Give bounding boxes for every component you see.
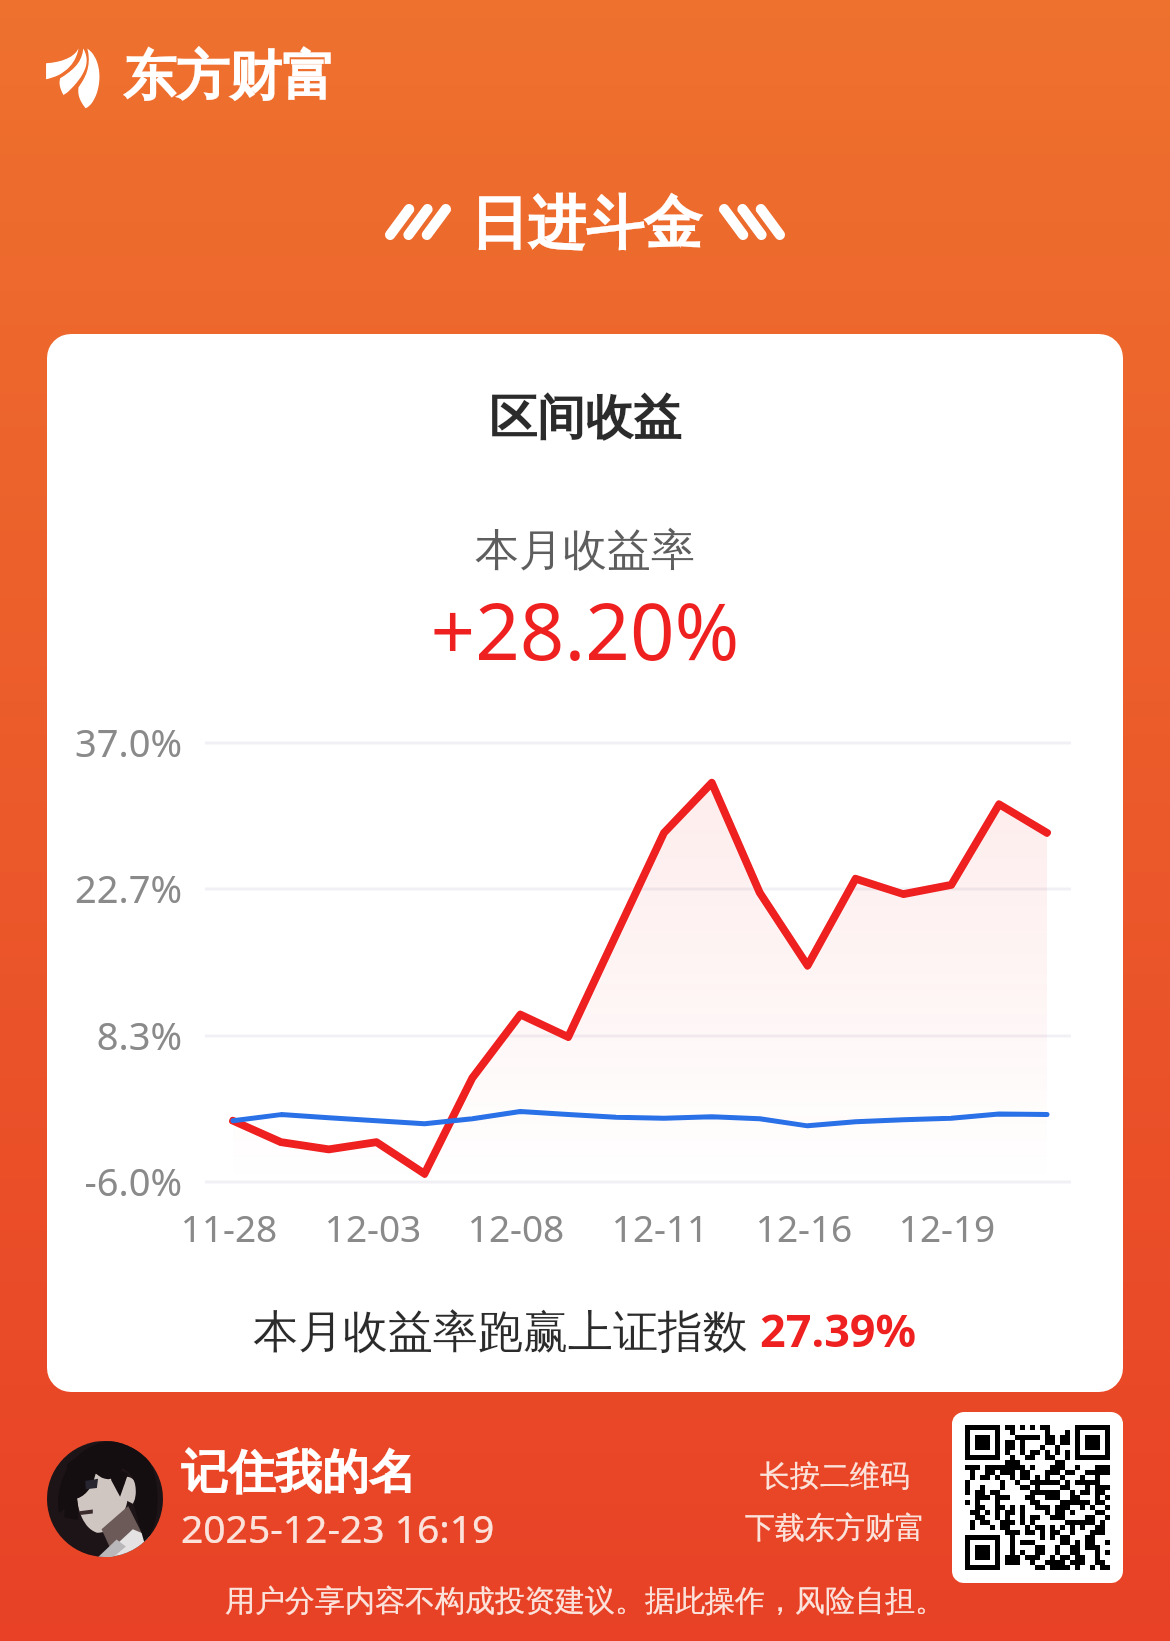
staticText: -6.0% xyxy=(50,1155,182,1207)
staticText: 用户分享内容不构成投资建议。据此操作，风险自担。 xyxy=(0,1582,1170,1620)
staticText: 12-08 xyxy=(446,1202,586,1252)
staticText: 记住我的名 xyxy=(181,1443,416,1502)
button[interactable]: 东方财富 xyxy=(44,43,335,110)
staticText: 22.7% xyxy=(50,862,182,914)
staticText: 日进斗金 xyxy=(470,187,702,260)
button[interactable]: 记住我的名 xyxy=(178,1437,518,1555)
staticText: 8.3% xyxy=(50,1009,182,1061)
staticText: 12-19 xyxy=(877,1202,1017,1252)
staticText: 37.0% xyxy=(50,716,182,768)
staticText: +28.20% xyxy=(47,577,1123,683)
staticText: 12-11 xyxy=(590,1202,730,1252)
staticText: 区间收益 xyxy=(47,388,1123,448)
staticText: 长按二维码 xyxy=(760,1457,910,1495)
staticText: 12-16 xyxy=(734,1202,874,1252)
staticText: 27.39% xyxy=(760,1299,917,1360)
staticText: 12-03 xyxy=(303,1202,443,1252)
staticText: 本月收益率 xyxy=(47,523,1123,578)
staticText: 下载东方财富 xyxy=(745,1509,925,1547)
staticText: 2025-12-23 16:19 xyxy=(181,1501,495,1554)
staticText: 本月收益率跑赢上证指数 xyxy=(253,1299,760,1360)
button[interactable]: QR code xyxy=(952,1412,1123,1583)
button[interactable]: 用户头像 xyxy=(47,1441,163,1557)
staticText: 东方财富 xyxy=(123,43,335,110)
staticText: 11-28 xyxy=(159,1202,299,1252)
